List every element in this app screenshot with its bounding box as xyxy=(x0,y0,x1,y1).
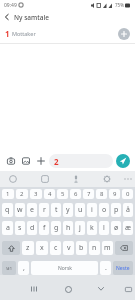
staticText: m xyxy=(104,243,111,253)
button[interactable]: k xyxy=(87,221,97,235)
button[interactable]: å xyxy=(123,203,133,217)
staticText: e xyxy=(30,205,34,215)
button[interactable]: , xyxy=(18,261,29,275)
button[interactable]: Norsk xyxy=(31,261,98,275)
button[interactable]: n xyxy=(89,241,100,255)
staticText: x xyxy=(40,243,44,253)
button[interactable]: f xyxy=(39,221,49,235)
staticText: i xyxy=(91,205,93,215)
button[interactable]: 3 xyxy=(30,189,42,199)
button[interactable]: 0 xyxy=(122,189,133,199)
staticText: v xyxy=(67,243,71,253)
button[interactable]: c xyxy=(50,241,61,255)
button[interactable]: e xyxy=(27,203,37,217)
button[interactable]: a xyxy=(2,221,13,235)
button[interactable]: y xyxy=(63,203,73,217)
staticText: k xyxy=(90,223,94,233)
staticText: n xyxy=(92,243,97,253)
staticText: 3 xyxy=(34,190,38,198)
button[interactable] xyxy=(22,157,30,165)
button[interactable]: s xyxy=(15,221,25,235)
staticText: u xyxy=(78,205,83,215)
staticText: 75% xyxy=(115,2,124,8)
button[interactable] xyxy=(9,175,17,183)
button[interactable]: æ xyxy=(123,221,133,235)
button[interactable]: 9 xyxy=(109,189,120,199)
staticText: y xyxy=(66,205,70,215)
button[interactable]: 8 xyxy=(96,189,107,199)
button[interactable]: u xyxy=(75,203,85,217)
button[interactable] xyxy=(118,28,130,40)
button[interactable]: 4 xyxy=(44,189,55,199)
button[interactable]: g xyxy=(51,221,61,235)
staticText: 7 xyxy=(87,190,91,198)
button[interactable] xyxy=(7,157,15,165)
button[interactable]: 6 xyxy=(70,189,81,199)
staticText: j xyxy=(79,223,81,233)
staticText: l xyxy=(103,223,105,233)
button[interactable]: 1 xyxy=(2,189,14,199)
staticText: Mottaker xyxy=(12,30,36,37)
button[interactable]: l xyxy=(99,221,109,235)
button[interactable] xyxy=(124,285,132,293)
button[interactable]: v xyxy=(63,241,74,255)
staticText: g xyxy=(54,223,59,233)
button[interactable] xyxy=(124,175,132,183)
button[interactable] xyxy=(72,175,80,183)
button[interactable]: z xyxy=(22,241,34,255)
button[interactable]: r xyxy=(39,203,49,217)
button[interactable]: 5 xyxy=(57,189,68,199)
staticText: 1 xyxy=(6,190,10,198)
button[interactable]: Neste xyxy=(113,261,133,275)
button[interactable]: d xyxy=(27,221,37,235)
staticText: 6 xyxy=(74,190,78,198)
staticText: s xyxy=(18,223,22,233)
button[interactable]: i xyxy=(87,203,97,217)
staticText: æ xyxy=(125,223,132,233)
staticText: o xyxy=(102,205,107,215)
button[interactable] xyxy=(115,241,133,255)
button[interactable]: p xyxy=(111,203,121,217)
button[interactable]: t xyxy=(51,203,61,217)
button[interactable] xyxy=(37,157,45,165)
staticText: w xyxy=(17,205,23,215)
button[interactable]: 7 xyxy=(83,189,94,199)
staticText: p xyxy=(114,205,119,215)
staticText: , xyxy=(23,263,25,273)
staticText: d xyxy=(30,223,35,233)
button[interactable]: m xyxy=(102,241,113,255)
staticText: r xyxy=(43,205,46,215)
button[interactable]: 2 xyxy=(16,189,28,199)
button[interactable]: q xyxy=(2,203,13,217)
button[interactable]: 2 xyxy=(49,154,113,168)
staticText: t xyxy=(55,205,58,215)
staticText: 09:49 xyxy=(4,2,17,9)
button[interactable] xyxy=(97,285,105,293)
staticText: Ny samtale xyxy=(14,13,49,22)
button[interactable] xyxy=(2,241,20,255)
button[interactable]: w xyxy=(15,203,25,217)
button[interactable] xyxy=(0,10,14,24)
button[interactable] xyxy=(63,284,73,294)
staticText: b xyxy=(79,243,84,253)
button[interactable] xyxy=(41,175,49,183)
button[interactable]: h xyxy=(63,221,73,235)
button[interactable]: j xyxy=(75,221,85,235)
button[interactable] xyxy=(30,285,38,293)
button[interactable]: b xyxy=(76,241,87,255)
staticText: h xyxy=(66,223,71,233)
staticText: 5 xyxy=(61,190,65,198)
button[interactable] xyxy=(103,175,111,183)
button[interactable] xyxy=(116,154,130,168)
button[interactable]: !#1 xyxy=(2,261,16,275)
button[interactable]: . xyxy=(100,261,111,275)
staticText: 8 xyxy=(100,190,104,198)
button[interactable]: ø xyxy=(111,221,121,235)
button[interactable]: x xyxy=(36,241,48,255)
button[interactable]: o xyxy=(99,203,109,217)
button[interactable]: 1 xyxy=(0,24,135,43)
staticText: Norsk xyxy=(58,265,72,272)
staticText: . xyxy=(105,263,107,273)
staticText: z xyxy=(26,243,30,253)
staticText: 1 xyxy=(5,28,10,39)
